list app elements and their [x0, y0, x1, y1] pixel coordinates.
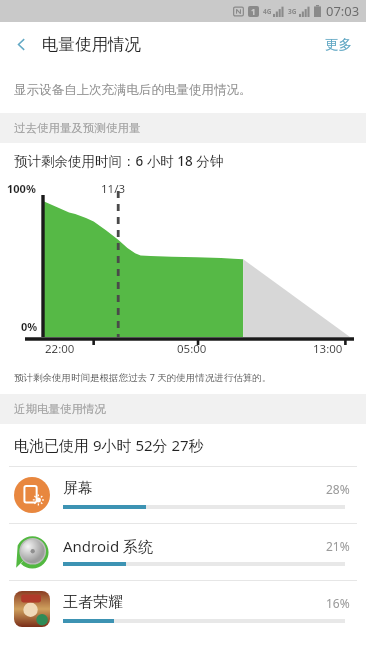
staticText: 05:00 [177, 341, 207, 357]
staticText: 07:03 [326, 2, 360, 20]
staticText: 王者荣耀 [63, 593, 123, 612]
button[interactable]: Android 系统 [0, 524, 366, 580]
staticText: 1 [251, 6, 256, 17]
staticText: 近期电量使用情况 [14, 402, 106, 416]
button[interactable]: 王者荣耀 [0, 581, 366, 637]
staticText: 11/3 [101, 181, 126, 197]
staticText: 22:00 [45, 341, 75, 357]
staticText: 0% [21, 319, 38, 334]
staticText: 电池已使用 9小时 52分 27秒 [14, 435, 204, 455]
staticText: 过去使用量及预测使用量 [14, 121, 141, 135]
staticText: 预计剩余使用时间：6 小时 18 分钟 [14, 152, 224, 170]
button[interactable]: 更多 [311, 22, 366, 66]
staticText: 3G [288, 7, 297, 16]
button[interactable]: Back [0, 22, 42, 66]
staticText: 16% [326, 595, 350, 611]
staticText: 28% [326, 481, 350, 497]
staticText: 预计剩余使用时间是根据您过去 7 天的使用情况进行估算的。 [14, 371, 272, 384]
button[interactable]: 屏幕 [0, 467, 366, 523]
staticText: 4G [263, 7, 272, 16]
staticText: 显示设备自上次充满电后的电量使用情况。 [14, 82, 252, 98]
staticText: 屏幕 [63, 479, 93, 498]
staticText: Android 系统 [63, 536, 154, 556]
staticText: 更多 [325, 36, 352, 53]
staticText: 100% [7, 181, 36, 196]
staticText: 电量使用情况 [42, 34, 141, 55]
staticText: 21% [326, 538, 350, 554]
staticText: 13:00 [313, 341, 343, 357]
